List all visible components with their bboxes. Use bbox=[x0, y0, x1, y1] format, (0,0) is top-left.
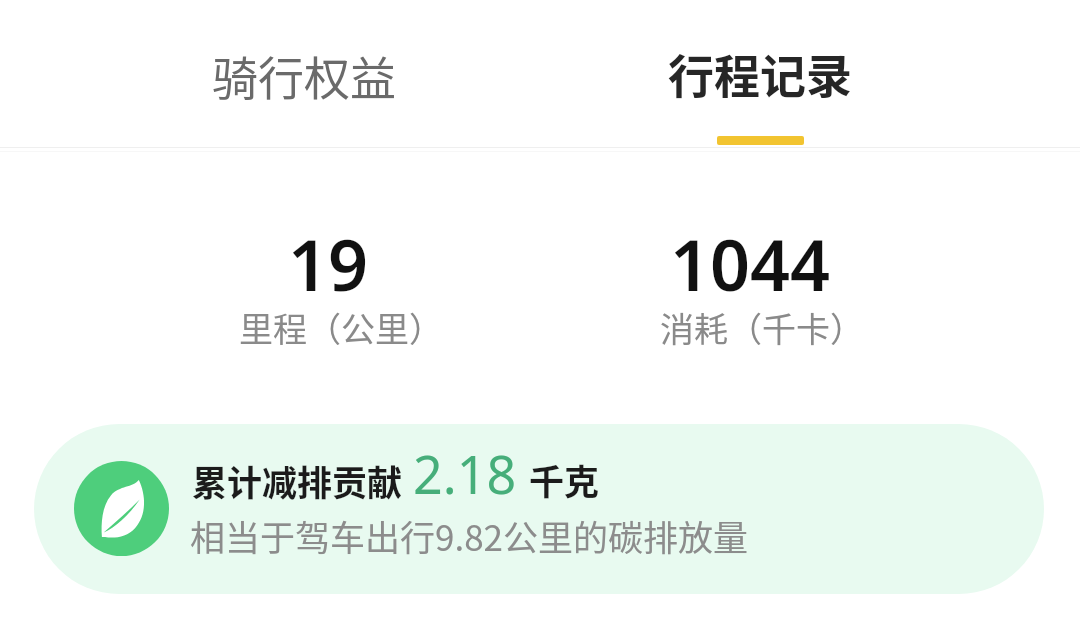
staticText: 1044 bbox=[670, 216, 831, 311]
button[interactable]: 骑行权益 bbox=[0, 0, 540, 147]
button[interactable]: 碳减排 bbox=[34, 424, 1044, 594]
staticText: 相当于驾车出行9.82公里的碳排放量 bbox=[190, 510, 749, 561]
staticText: 里程（公里） bbox=[239, 303, 443, 352]
staticText: 行程记录 bbox=[668, 40, 852, 107]
staticText: 19 bbox=[288, 216, 369, 311]
other: 碳减排 bbox=[74, 461, 169, 556]
staticText: 骑行权益 bbox=[212, 42, 396, 109]
staticText: 2.18 bbox=[413, 438, 517, 509]
button[interactable]: 行程记录 bbox=[540, 0, 1080, 147]
staticText: 累计减排贡献 bbox=[192, 455, 403, 506]
staticText: 千克 bbox=[529, 454, 600, 505]
staticText: 消耗（千卡） bbox=[660, 303, 864, 352]
